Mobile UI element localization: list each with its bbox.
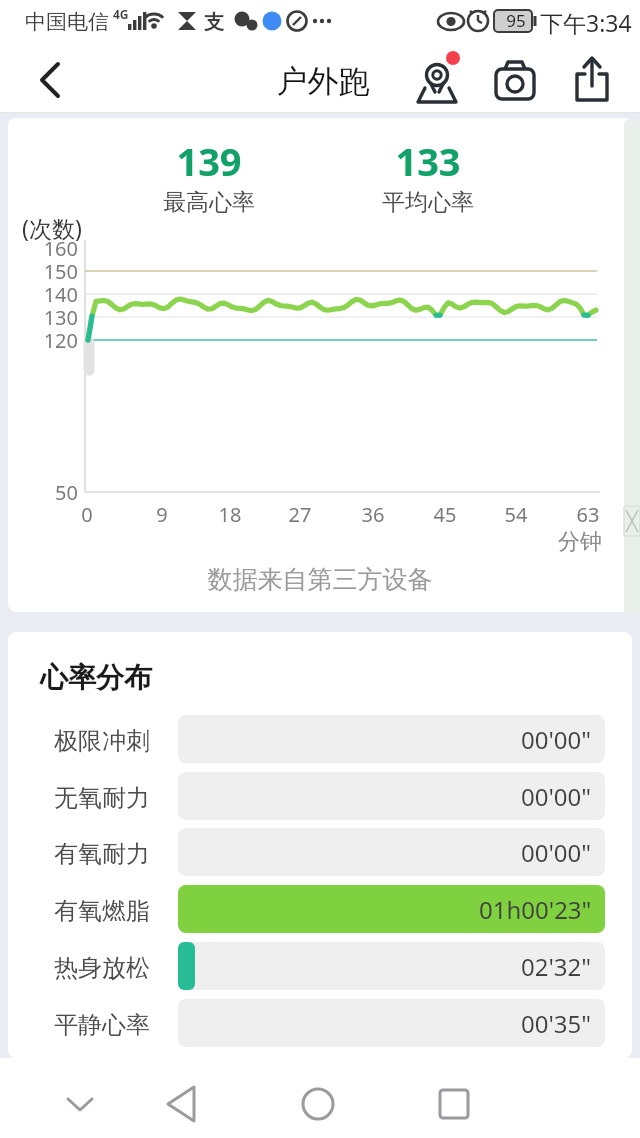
staticText: 54 [496, 501, 536, 528]
staticText: 中国电信 [25, 9, 109, 35]
staticText: 139 [139, 135, 279, 187]
staticText: 01h00'23" [479, 893, 592, 926]
button[interactable] [28, 62, 72, 102]
staticText: 9 [142, 501, 182, 528]
button[interactable]: 00'00" [178, 715, 605, 763]
button[interactable] [158, 1080, 206, 1128]
staticText: 数据来自第三方设备 [8, 564, 632, 595]
button[interactable] [494, 58, 538, 104]
staticText: 00'00" [521, 836, 592, 869]
staticText: 平静心率 [38, 1010, 150, 1040]
staticText: 平均心率 [358, 188, 498, 217]
button[interactable]: 01h00'23" [178, 885, 605, 933]
staticText: 4G [113, 6, 129, 22]
staticText: 160 [26, 235, 78, 262]
button[interactable] [570, 54, 616, 104]
staticText: 极限冲刺 [38, 726, 150, 756]
staticText: 18 [210, 501, 250, 528]
button[interactable] [411, 52, 463, 106]
button[interactable]: 00'00" [178, 828, 605, 876]
staticText: 63 [568, 501, 608, 528]
staticText: 150 [26, 258, 78, 285]
button[interactable] [56, 1080, 104, 1128]
staticText: 最高心率 [139, 188, 279, 217]
staticText: 133 [358, 135, 498, 187]
staticText: 有氧耐力 [38, 839, 150, 869]
button[interactable]: 00'35" [178, 999, 605, 1047]
button[interactable]: 00'00" [178, 772, 605, 820]
staticText: 36 [353, 501, 393, 528]
staticText: 140 [26, 281, 78, 308]
staticText: 热身放松 [38, 953, 150, 983]
button[interactable] [430, 1080, 478, 1128]
staticText: 0 [67, 501, 107, 528]
staticText: 120 [26, 327, 78, 354]
staticText: 45 [425, 501, 465, 528]
staticText: 27 [280, 501, 320, 528]
staticText: (次数) [22, 212, 82, 243]
staticText: 心率分布 [40, 660, 152, 695]
staticText: 户外跑 [223, 62, 423, 101]
staticText: 有氧燃脂 [38, 896, 150, 926]
button[interactable] [294, 1080, 342, 1128]
staticText: 50 [26, 479, 78, 506]
staticText: 无氧耐力 [38, 783, 150, 813]
staticText: 130 [26, 304, 78, 331]
staticText: 95 [497, 9, 535, 32]
button[interactable]: 02'32" [178, 942, 605, 990]
staticText: 分钟 [532, 528, 602, 556]
staticText: 下午3:34 [540, 7, 632, 38]
staticText: 支 [204, 10, 224, 35]
staticText: 02'32" [521, 950, 592, 983]
staticText: 00'00" [521, 723, 592, 756]
staticText: 00'00" [521, 780, 592, 813]
staticText: 00'35" [521, 1007, 592, 1040]
